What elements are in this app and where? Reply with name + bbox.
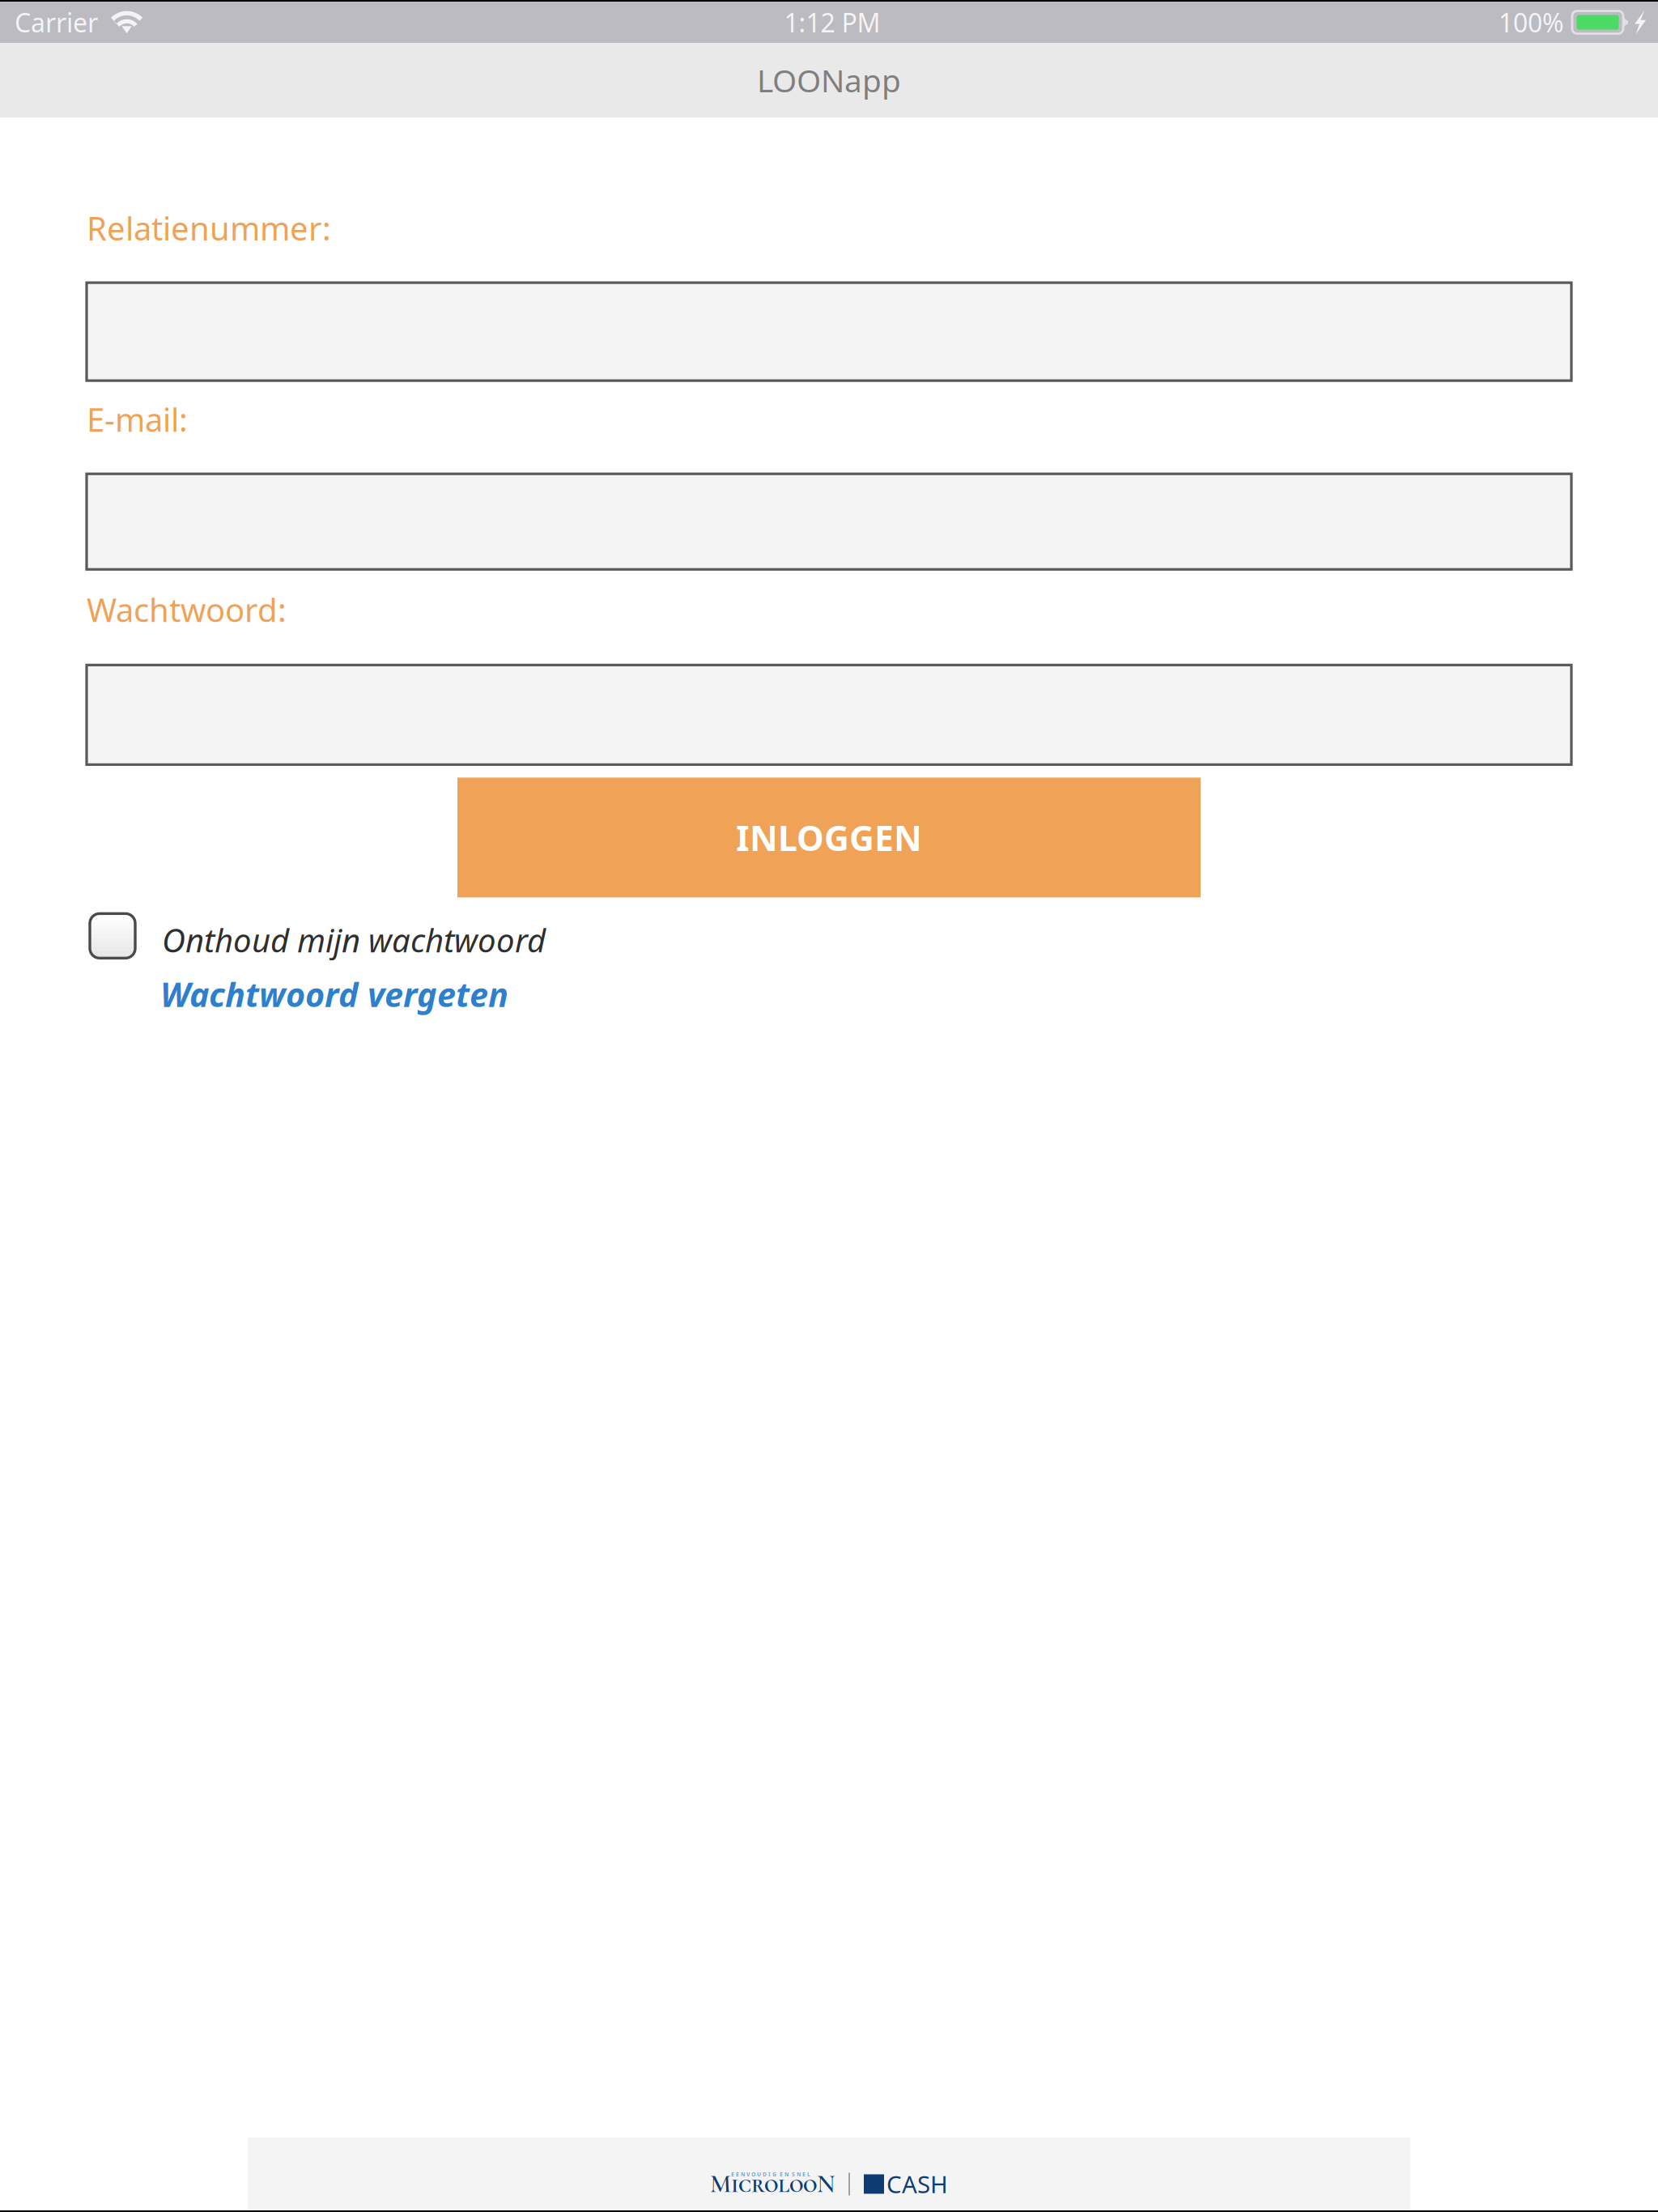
staticText: MicrolooN (710, 2169, 835, 2199)
staticText: Wachtwoord: (87, 588, 287, 631)
button[interactable]: Wachtwoord vergeten (160, 972, 508, 1016)
staticText: E-mail: (87, 398, 188, 441)
button[interactable]: Relatienummer (87, 283, 1571, 381)
staticText: Carrier (15, 5, 98, 40)
button[interactable]: Onthoud mijn wachtwoord (87, 914, 1571, 958)
staticText: LOONapp (757, 59, 901, 101)
staticText: Onthoud mijn wachtwoord (162, 918, 546, 961)
staticText: 100% (1499, 5, 1564, 40)
staticText: CASH (886, 2168, 948, 2200)
staticText: E E N V O U D I G E N S N E L (731, 2171, 810, 2178)
staticText: Relatienummer: (87, 206, 331, 249)
staticText: 1:12 PM (784, 5, 880, 40)
button[interactable]: E-mail (87, 474, 1571, 569)
button[interactable]: INLOGGEN (457, 778, 1201, 897)
staticText: INLOGGEN (736, 815, 922, 860)
staticText: Wachtwoord vergeten (160, 972, 508, 1016)
button[interactable]: Wachtwoord (87, 665, 1571, 765)
